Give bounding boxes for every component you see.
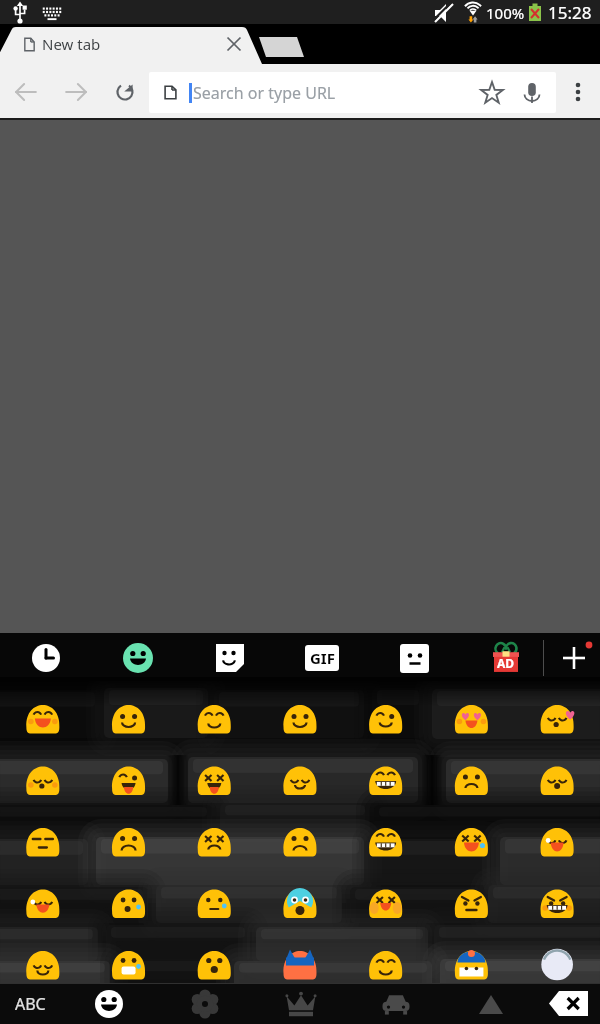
button[interactable]: Stickers — [184, 633, 276, 683]
button[interactable]: Recent — [0, 633, 92, 683]
button[interactable]: Emoticons — [368, 633, 460, 683]
button[interactable]: More options — [556, 64, 600, 120]
button[interactable]: Bookmark — [472, 73, 512, 113]
button[interactable]: ABC — [0, 983, 61, 1024]
staticText: 15:28 — [548, 1, 592, 24]
button[interactable]: Gift ad — [460, 633, 552, 683]
button[interactable]: Reload — [100, 64, 149, 120]
button[interactable]: Close tab — [218, 28, 250, 60]
button[interactable]: Shift — [443, 983, 538, 1024]
button[interactable]: Emoji — [92, 633, 184, 683]
button[interactable]: Search or type URL — [149, 72, 556, 113]
button[interactable]: Voice search — [512, 73, 552, 113]
button[interactable]: Car mode — [348, 983, 443, 1024]
button[interactable]: GIF — [276, 633, 368, 683]
button[interactable]: Backspace — [538, 983, 600, 1024]
button[interactable]: Emoji — [61, 983, 157, 1024]
button[interactable]: Forward — [52, 64, 100, 120]
button[interactable]: Themes — [253, 983, 348, 1024]
button[interactable]: Settings — [157, 983, 253, 1024]
staticText: 100% — [486, 3, 525, 23]
button[interactable]: Add — [552, 633, 600, 683]
staticText: AD — [497, 655, 515, 671]
button[interactable]: Back — [0, 64, 52, 120]
staticText: New tab — [42, 34, 101, 54]
staticText: ABC — [15, 993, 46, 1015]
staticText: Search or type URL — [193, 82, 336, 104]
staticText: GIF — [310, 648, 335, 668]
